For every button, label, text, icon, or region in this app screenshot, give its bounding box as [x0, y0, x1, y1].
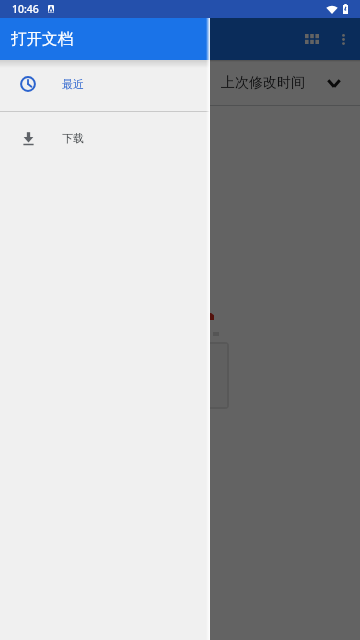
- button[interactable]: 下载: [0, 114, 210, 162]
- staticText: 打开文档: [11, 29, 73, 49]
- button[interactable]: More options: [327, 23, 359, 55]
- staticText: 10:46: [12, 2, 39, 16]
- staticText: 下载: [62, 131, 84, 145]
- button[interactable]: 最近: [0, 60, 210, 108]
- other: Sort order: [327, 79, 341, 88]
- button[interactable]: 上次修改时间: [213, 68, 360, 98]
- button[interactable]: Grid view: [293, 20, 331, 58]
- staticText: 上次修改时间: [221, 74, 305, 92]
- button[interactable]: [121, 306, 229, 409]
- staticText: 最近: [62, 77, 84, 91]
